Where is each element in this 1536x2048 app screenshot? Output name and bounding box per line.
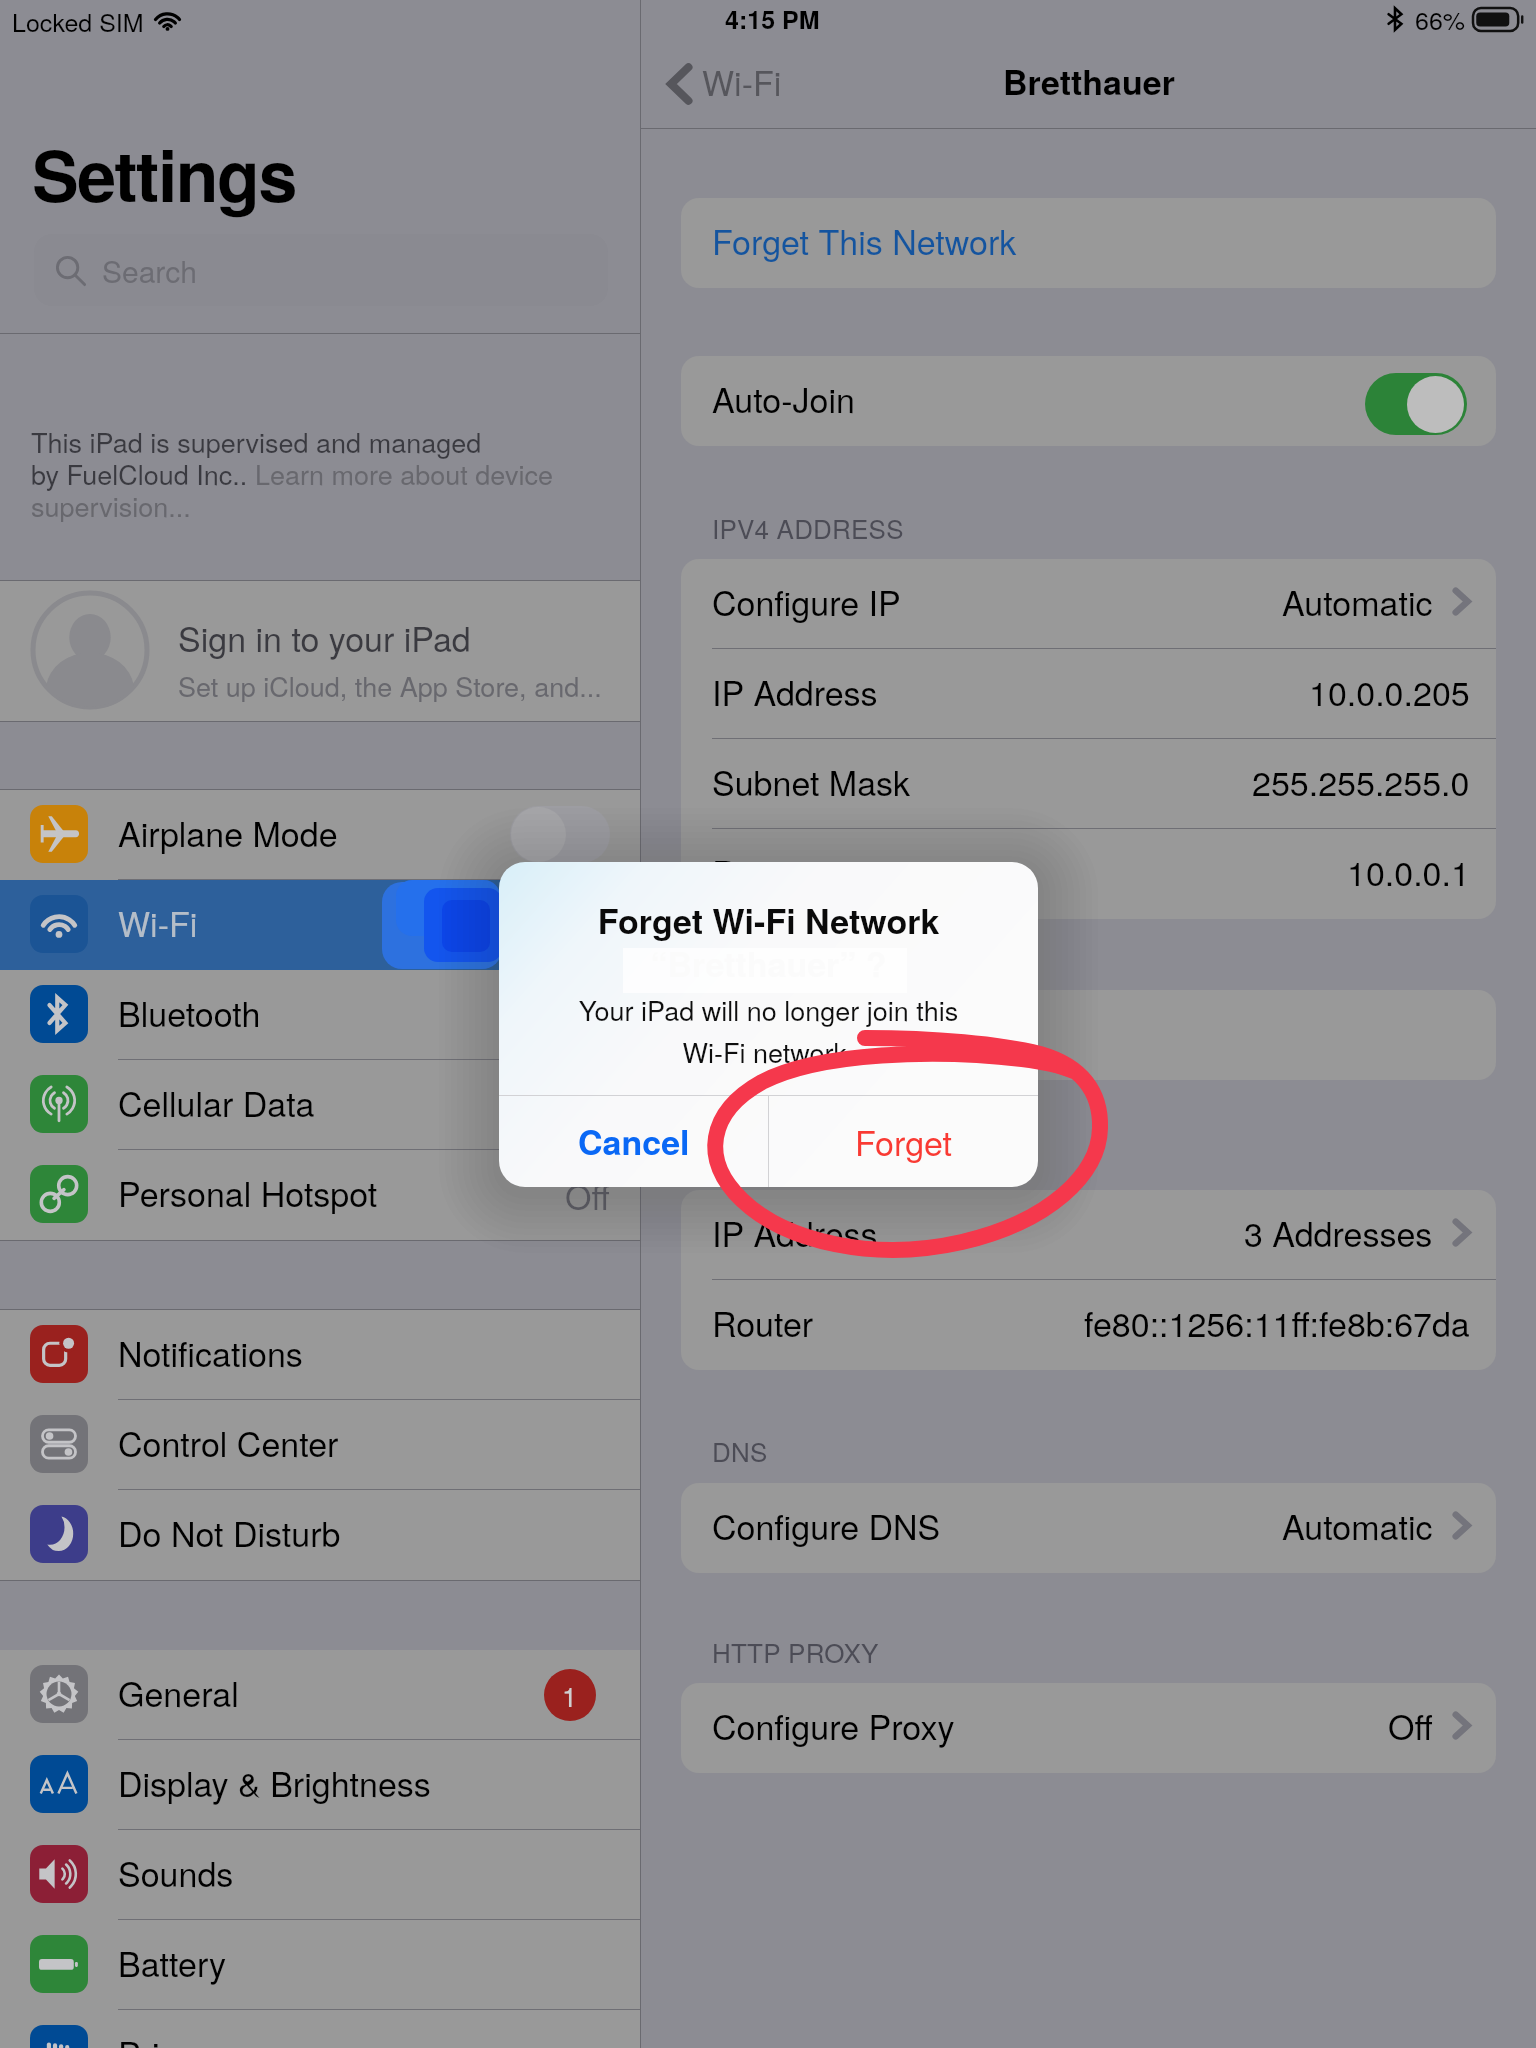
- staticText: Bretthauer: [1003, 57, 1175, 106]
- staticText: Automatic: [1282, 1501, 1433, 1550]
- button[interactable]: Forget: [769, 1096, 1038, 1187]
- button[interactable]: Configure IP: [681, 559, 1496, 649]
- button[interactable]: Airplane Mode toggle: [510, 806, 610, 863]
- staticText: Forget Wi-Fi Network: [499, 896, 1038, 945]
- button[interactable]: Cancel: [499, 1096, 768, 1187]
- staticText: Notifications: [118, 1328, 303, 1377]
- staticText: Sounds: [118, 1848, 234, 1897]
- staticText: Personal Hotspot: [118, 1168, 378, 1217]
- button[interactable]: Router: [681, 829, 1496, 919]
- staticText: Automatic: [1282, 577, 1433, 626]
- staticText: IPV4 ADDRESS: [712, 509, 904, 546]
- staticText: IP Address: [712, 1208, 878, 1257]
- staticText: Do Not Disturb: [118, 1508, 341, 1557]
- staticText: by FuelCloud Inc..: [31, 454, 255, 493]
- staticText: 10.0.0.1: [1347, 847, 1470, 896]
- staticText: Privacy: [118, 2028, 229, 2048]
- staticText: 4:15 PM: [725, 1, 820, 37]
- button[interactable]: Personal Hotspot: [0, 1150, 640, 1240]
- button[interactable]: Do Not Disturb: [0, 1490, 640, 1580]
- staticText: Battery: [118, 1938, 227, 1987]
- staticText: 1: [562, 1676, 578, 1715]
- staticText: Sign in to your iPad: [178, 613, 471, 662]
- button[interactable]: Configure DNS: [681, 1483, 1496, 1573]
- staticText: 10.0.0.205: [1309, 667, 1470, 716]
- button[interactable]: Configure Proxy: [681, 1683, 1496, 1773]
- staticText: Display & Brightness: [118, 1758, 431, 1807]
- button[interactable]: Control Center: [0, 1400, 640, 1490]
- staticText: This iPad is supervised and managed: [31, 422, 482, 461]
- button[interactable]: Back to Wi-Fi: [661, 47, 796, 121]
- staticText: Set up iCloud, the App Store, and...: [178, 666, 602, 705]
- staticText: Auto-Join: [712, 374, 855, 423]
- staticText: IP Address: [712, 667, 878, 716]
- staticText: HTTP PROXY: [712, 1633, 879, 1670]
- staticText: DNS: [712, 1432, 768, 1469]
- button[interactable]: Privacy: [0, 2010, 640, 2048]
- button[interactable]: Sounds: [0, 1830, 640, 1920]
- staticText: 3 Addresses: [1244, 1208, 1433, 1257]
- staticText: Wi-Fi: [702, 57, 782, 106]
- staticText: Router: [712, 1298, 814, 1347]
- staticText: Subnet Mask: [712, 757, 911, 806]
- button[interactable]: Notifications: [0, 1310, 640, 1400]
- staticText: Airplane Mode: [118, 808, 338, 857]
- staticText: 66%: [1415, 1, 1466, 37]
- staticText: “Bretthauer” ?: [499, 939, 1038, 988]
- button[interactable]: General: [0, 1650, 640, 1740]
- staticText: Your iPad will no longer join this Wi-Fi…: [499, 990, 1038, 1070]
- staticText: General: [118, 1668, 239, 1717]
- staticText: Search: [102, 249, 197, 292]
- staticText: supervision...: [31, 486, 191, 525]
- staticText: Wi-Fi: [118, 898, 198, 947]
- staticText: Bluetooth: [118, 988, 261, 1037]
- staticText: Off: [565, 1171, 610, 1220]
- button[interactable]: Router: [681, 1280, 1496, 1370]
- staticText: Learn more about device: [255, 454, 553, 493]
- staticText: Settings: [32, 123, 296, 223]
- staticText: Router: [712, 847, 814, 896]
- button[interactable]: Search: [34, 234, 608, 306]
- button[interactable]: Cellular Data: [0, 1060, 640, 1150]
- staticText: Control Center: [118, 1418, 339, 1467]
- button[interactable]: Airplane Mode: [0, 790, 640, 880]
- button[interactable]: Battery: [0, 1920, 640, 2010]
- button[interactable]: IP Address: [681, 649, 1496, 739]
- staticText: Locked SIM: [12, 3, 144, 39]
- staticText: IPV6 ADDRESS: [712, 1140, 904, 1177]
- staticText: Configure DNS: [712, 1501, 941, 1550]
- staticText: fe80::1256:11ff:fe8b:67da: [1084, 1298, 1470, 1347]
- button[interactable]: Forget This Network: [681, 198, 1496, 288]
- staticText: Forget: [855, 1117, 953, 1166]
- button[interactable]: IP Address: [681, 1190, 1496, 1280]
- staticText: Off: [1388, 1701, 1433, 1750]
- staticText: Cellular Data: [118, 1078, 315, 1127]
- staticText: Renew Lease: [712, 1008, 920, 1057]
- button[interactable]: Subnet Mask: [681, 739, 1496, 829]
- button[interactable]: Renew Lease: [681, 990, 1496, 1080]
- staticText: 255.255.255.0: [1252, 757, 1470, 806]
- staticText: Configure Proxy: [712, 1701, 955, 1750]
- button[interactable]: Sign in to your iPad: [0, 581, 640, 721]
- button[interactable]: Auto-Join toggle: [1365, 373, 1467, 435]
- staticText: Configure IP: [712, 577, 901, 626]
- button[interactable]: Display & Brightness: [0, 1740, 640, 1830]
- staticText: Forget This Network: [712, 216, 1017, 265]
- button[interactable]: Bluetooth: [0, 970, 640, 1060]
- button[interactable]: Wi-Fi: [0, 880, 640, 970]
- staticText: Cancel: [578, 1117, 690, 1166]
